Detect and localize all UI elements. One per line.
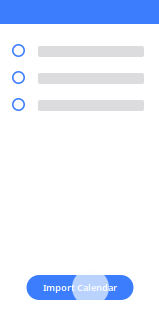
staticText: Import Calendar: [43, 281, 117, 294]
button[interactable]: Select calendar: [0, 92, 159, 119]
button[interactable]: Select calendar: [0, 65, 159, 92]
button[interactable]: Select calendar: [0, 38, 159, 65]
button[interactable]: Import Calendar: [26, 268, 133, 307]
